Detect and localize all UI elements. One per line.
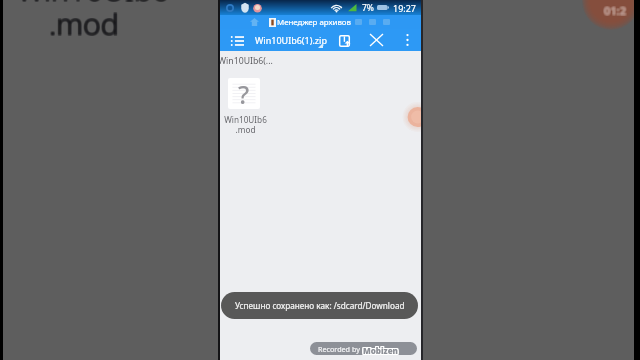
button[interactable]: Extract archive	[334, 29, 356, 51]
staticText: 01:2	[605, 4, 627, 19]
button[interactable]: Mobizen recorder	[402, 104, 421, 130]
staticText: .mod	[49, 2, 119, 43]
staticText: Win10UIb6	[18, 0, 171, 11]
staticText: Win10UIb6	[18, 0, 171, 10]
staticText: 01:2	[604, 3, 626, 18]
staticText: 01:2	[603, 3, 625, 18]
staticText: Mobizen	[362, 346, 397, 355]
staticText: 19:27	[393, 2, 417, 14]
staticText: 01:2	[603, 2, 625, 17]
button[interactable]: ?	[219, 78, 271, 136]
staticText: 01:2	[604, 2, 626, 17]
staticText: Mobizen	[363, 345, 398, 355]
staticText: .mod	[48, 3, 118, 44]
staticText: 01:2	[603, 4, 625, 19]
staticText: .mod	[49, 3, 119, 44]
staticText: Recorded by	[318, 344, 360, 354]
staticText: ?	[238, 78, 250, 108]
button[interactable]: Menu	[225, 29, 249, 51]
button[interactable]: Recording timer	[582, 0, 640, 30]
staticText: .mod	[50, 2, 120, 43]
staticText: Mobizen	[364, 344, 399, 355]
staticText: Win10UIb6(...	[219, 55, 273, 67]
staticText: Mobizen	[363, 346, 398, 355]
staticText: Успешно сохранено как: /sdcard/Download	[235, 300, 405, 311]
staticText: 01:2	[605, 2, 627, 17]
staticText: Mobizen	[364, 346, 399, 355]
staticText: Win10UIb6	[16, 0, 169, 11]
staticText: Win10UIb6	[17, 0, 170, 10]
staticText: 01:2	[605, 3, 627, 18]
button[interactable]: Recorded by Mobizen	[310, 342, 417, 355]
staticText: Win10UIb6	[18, 0, 171, 9]
staticText: Win10UIb6	[16, 0, 169, 10]
staticText: Win10UIb6(1).zip	[255, 34, 327, 46]
staticText: Mobizen	[363, 345, 398, 355]
button[interactable]: Close	[364, 29, 388, 51]
staticText: Менеджер архивов	[277, 17, 351, 28]
staticText: Win10UIb6	[17, 0, 170, 11]
staticText: Mobizen	[362, 345, 397, 355]
staticText: 01:2	[604, 4, 626, 19]
staticText: .mod	[48, 2, 118, 43]
staticText: Win10UIb6 .mod	[224, 114, 267, 136]
staticText: .mod	[50, 3, 120, 44]
staticText: Mobizen	[364, 345, 399, 355]
staticText: .mod	[50, 4, 120, 45]
staticText: Mobizen	[363, 344, 398, 355]
staticText: .mod	[48, 4, 118, 45]
staticText: .mod	[49, 4, 119, 45]
staticText: Mobizen	[362, 344, 397, 355]
button[interactable]: More options	[398, 29, 416, 51]
staticText: 7%	[362, 2, 374, 14]
staticText: Win10UIb6	[16, 0, 169, 9]
staticText: Win10UIb6	[17, 0, 170, 9]
